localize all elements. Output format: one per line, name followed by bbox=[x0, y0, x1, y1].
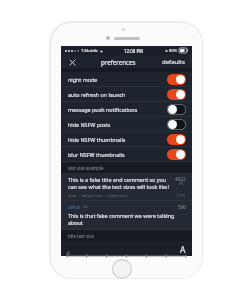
staticText: 4h bbox=[83, 204, 88, 210]
button[interactable]: Off bbox=[167, 119, 186, 130]
staticText: night mode bbox=[68, 76, 98, 83]
staticText: hide NSFW posts bbox=[68, 121, 111, 128]
button[interactable]: deltas bbox=[61, 201, 192, 229]
staticText: A bbox=[180, 244, 186, 256]
staticText: deltas bbox=[68, 204, 81, 210]
staticText: hide NSFW thumbnails bbox=[68, 136, 126, 143]
staticText: 80% bbox=[169, 48, 178, 54]
button[interactable]: This is a fake title and comment so you … bbox=[61, 173, 192, 200]
staticText: • fakeperson bbox=[79, 193, 103, 198]
button[interactable]: auto refresh on launch bbox=[61, 87, 192, 101]
staticText: 506 bbox=[178, 204, 186, 210]
button[interactable]: defaults bbox=[161, 56, 186, 68]
staticText: This is that fake comment we were talkin… bbox=[68, 212, 186, 226]
button[interactable]: On bbox=[167, 74, 186, 85]
staticText: 4mo bbox=[68, 193, 77, 198]
staticText: preferences bbox=[101, 58, 136, 66]
staticText: • r/whatever bbox=[105, 193, 129, 198]
button[interactable]: Off bbox=[167, 104, 186, 115]
staticText: blur NSFW thumbnails bbox=[68, 151, 125, 158]
staticText: message push notifications bbox=[68, 106, 138, 113]
button[interactable]: hide NSFW posts bbox=[61, 117, 192, 131]
button[interactable]: Close bbox=[67, 57, 77, 67]
button[interactable]: On bbox=[167, 149, 186, 160]
staticText: 12:08 PM bbox=[124, 48, 144, 54]
staticText: T-Mobile bbox=[81, 48, 98, 54]
button[interactable]: On bbox=[167, 134, 186, 145]
staticText: text size example bbox=[68, 165, 104, 171]
staticText: This is a fake title and comment so you … bbox=[68, 176, 172, 190]
staticText: defaults bbox=[162, 58, 185, 66]
button[interactable]: On bbox=[167, 89, 186, 100]
button[interactable]: message push notifications bbox=[61, 102, 192, 116]
staticText: 1375 bbox=[176, 193, 186, 198]
button[interactable]: blur NSFW thumbnails bbox=[61, 147, 192, 161]
button[interactable]: hide NSFW thumbnails bbox=[61, 132, 192, 146]
button[interactable]: night mode bbox=[61, 72, 192, 86]
staticText: 4022 bbox=[175, 176, 186, 182]
staticText: A bbox=[67, 250, 70, 256]
staticText: auto refresh on launch bbox=[68, 91, 126, 98]
staticText: title text size bbox=[68, 233, 94, 239]
